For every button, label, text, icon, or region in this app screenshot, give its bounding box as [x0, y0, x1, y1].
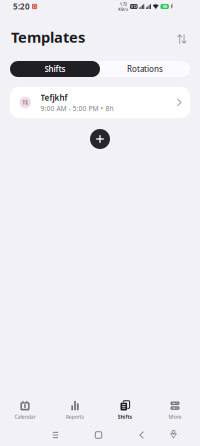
staticText: Shifts	[44, 64, 65, 74]
button[interactable]: TE	[10, 87, 190, 118]
staticText: TE	[22, 99, 28, 106]
staticText: More	[168, 413, 181, 420]
staticText: KB/s	[118, 6, 128, 12]
button[interactable]: Back	[120, 426, 163, 444]
button[interactable]: Shifts	[100, 395, 150, 423]
button[interactable]: Calendar	[0, 395, 50, 423]
button[interactable]: Recents	[77, 426, 120, 444]
staticText: Rotations	[127, 64, 163, 74]
staticText: 1.72	[120, 1, 127, 6]
button[interactable]: Rotations	[100, 61, 190, 77]
staticText: Tefjkhf	[41, 92, 68, 103]
button[interactable]: Download	[163, 426, 184, 444]
staticText: Shifts	[117, 413, 132, 420]
staticText: Reports	[65, 413, 84, 420]
staticText: 90	[163, 4, 167, 9]
staticText: VO	[131, 4, 137, 9]
staticText: 9:00 AM - 5:00 PM • 8h	[41, 104, 114, 113]
button[interactable]: Reports	[50, 395, 100, 423]
staticText: 5:20	[13, 1, 30, 12]
button[interactable]: Shifts	[10, 61, 100, 77]
button[interactable]: More	[150, 395, 200, 423]
staticText: Calendar	[14, 413, 35, 420]
staticText: Templates	[11, 27, 85, 47]
button[interactable]: Add template	[88, 127, 112, 151]
button[interactable]: Menu	[34, 426, 77, 444]
button[interactable]: Sort	[170, 26, 194, 48]
